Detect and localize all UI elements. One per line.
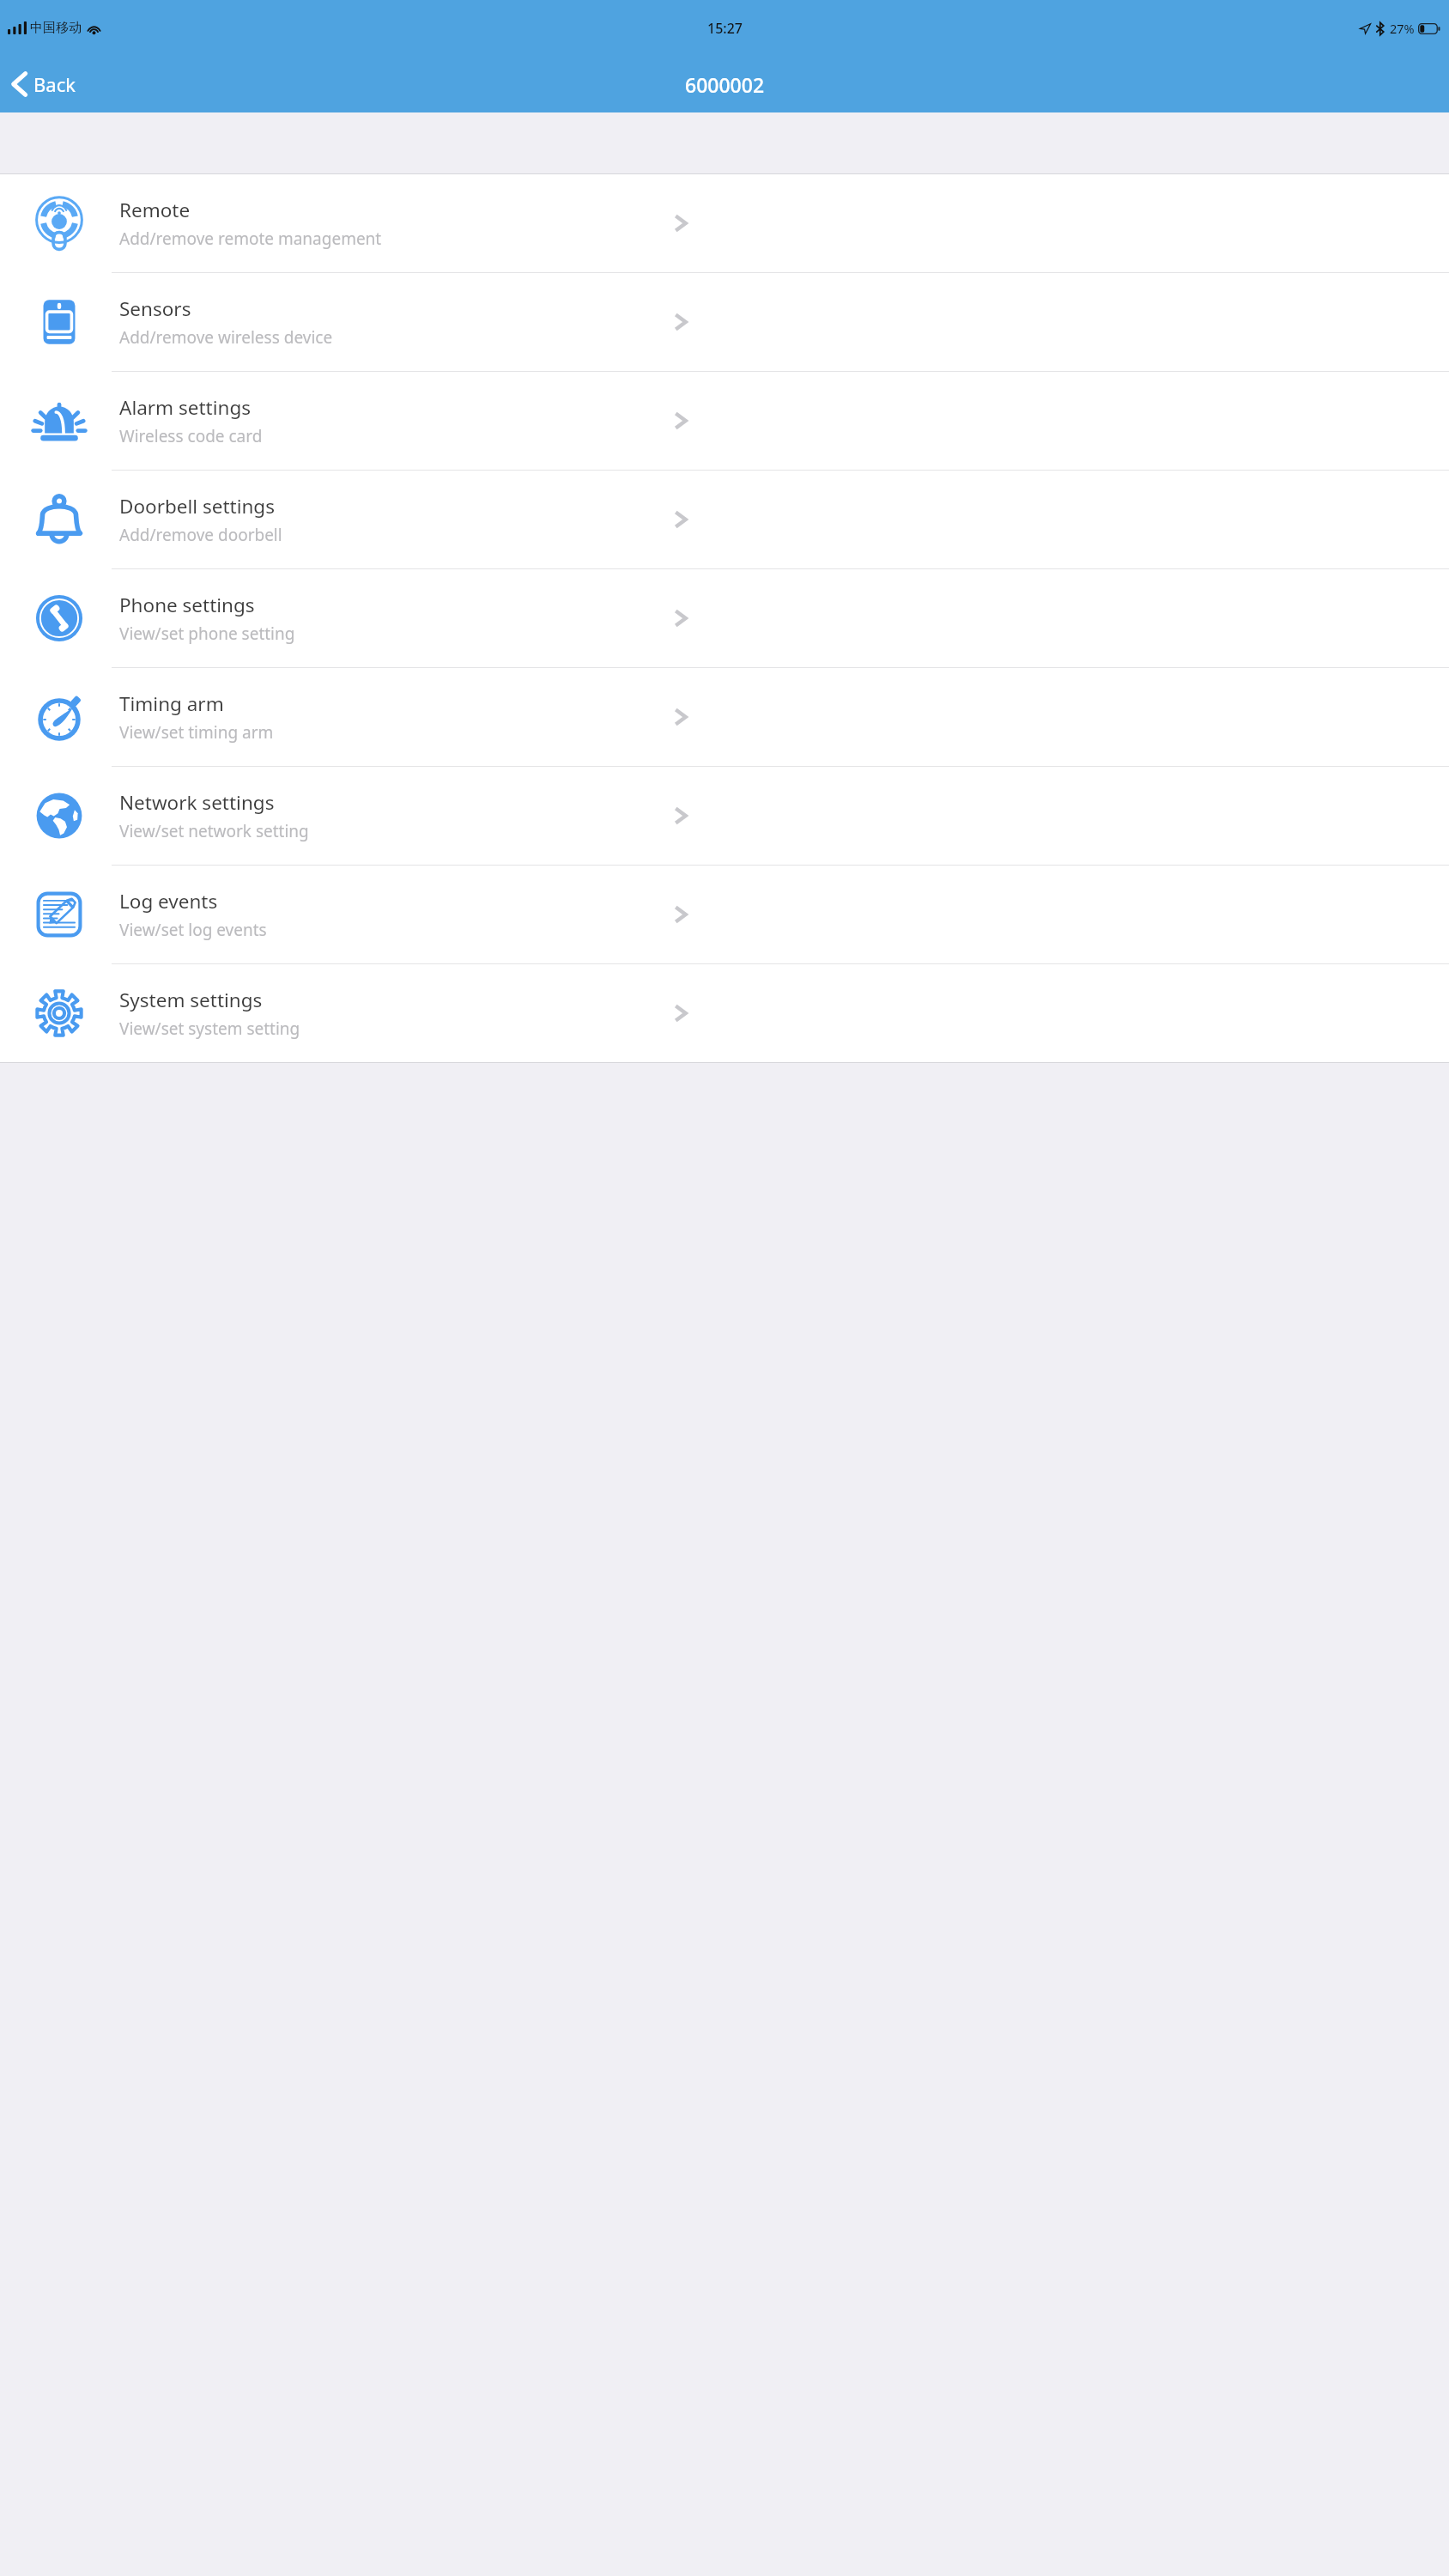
button[interactable]: Doorbell settings [0,471,1449,568]
staticText: Doorbell settings [119,493,275,519]
button[interactable]: Back [0,65,86,103]
button[interactable]: Alarm settings [0,372,1449,470]
staticText: View/set timing arm [119,721,274,744]
staticText: View/set system setting [119,1018,300,1040]
staticText: System settings [119,987,263,1013]
staticText: Alarm settings [119,394,252,421]
staticText: Timing arm [119,690,224,717]
button[interactable]: Timing arm [0,668,1449,766]
staticText: 15:27 [707,19,743,38]
staticText: Wireless code card [119,425,263,447]
staticText: View/set network setting [119,820,309,842]
button[interactable]: Phone settings [0,569,1449,667]
staticText: Log events [119,888,218,914]
button[interactable]: Remote [0,174,1449,272]
staticText: Network settings [119,789,275,816]
staticText: Back [33,71,76,97]
staticText: 6000002 [685,71,765,98]
button[interactable]: Log events [0,866,1449,963]
button[interactable]: Sensors [0,273,1449,371]
staticText: Sensors [119,295,191,322]
staticText: Add/remove remote management [119,228,382,250]
staticText: Add/remove doorbell [119,524,282,546]
staticText: Phone settings [119,592,255,618]
staticText: Remote [119,197,191,223]
staticText: Add/remove wireless device [119,326,333,349]
staticText: View/set phone setting [119,623,295,645]
staticText: 中国移动 [30,20,82,36]
staticText: View/set log events [119,919,267,941]
button[interactable]: System settings [0,964,1449,1062]
button[interactable]: Network settings [0,767,1449,865]
staticText: 27% [1390,20,1415,37]
